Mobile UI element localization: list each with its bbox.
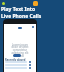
button[interactable] [4, 64, 36, 66]
button[interactable] [4, 61, 36, 63]
button[interactable] [4, 67, 36, 69]
button[interactable]: Action [13, 54, 21, 57]
button[interactable]: App icon [33, 1, 38, 6]
staticText: Recently played [5, 58, 26, 62]
staticText: Live Phone Calls [1, 13, 42, 20]
staticText: Play Text Into [1, 6, 36, 13]
staticText: Lorem ipsum dolor sit amet consectetur a… [10, 43, 30, 58]
